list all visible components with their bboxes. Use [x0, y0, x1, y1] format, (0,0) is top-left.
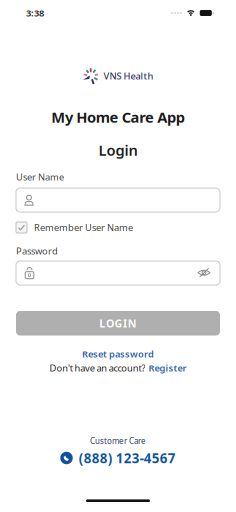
button[interactable]: User Name [16, 188, 220, 212]
staticText: 3:38 [26, 7, 44, 19]
button[interactable]: Show password [197, 267, 220, 278]
staticText: Customer Care [90, 436, 146, 446]
staticText: User Name [16, 171, 64, 183]
staticText: Login [98, 140, 137, 160]
button[interactable]: Remember User Name [16, 222, 133, 233]
staticText: My Home Care App [51, 107, 185, 127]
button[interactable]: LOGIN [16, 311, 220, 335]
staticText: VNS Health [103, 70, 153, 82]
button[interactable]: Password [16, 261, 220, 285]
staticText: Reset password [82, 348, 154, 360]
staticText: Password [16, 245, 58, 257]
button[interactable]: (888) 123-4567 [60, 451, 176, 465]
staticText: LOGIN [99, 316, 137, 330]
staticText: Remember User Name [34, 221, 133, 234]
staticText: Don't have an account? [50, 362, 145, 374]
staticText: Register [148, 362, 186, 374]
staticText: (888) 123-4567 [79, 449, 176, 467]
button[interactable]: Register [148, 362, 186, 374]
button[interactable]: Reset password [82, 348, 154, 359]
